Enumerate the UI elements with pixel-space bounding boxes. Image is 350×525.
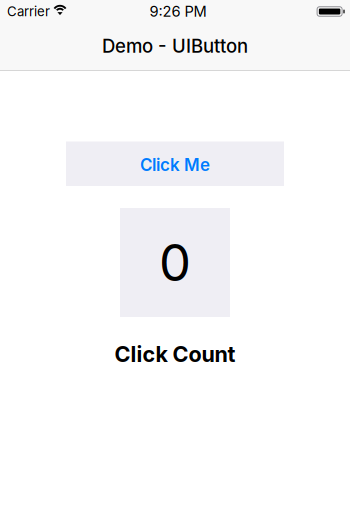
staticText: 9:26 PM bbox=[149, 3, 206, 20]
button[interactable]: Click Me bbox=[66, 141, 284, 186]
staticText: Click Count bbox=[114, 341, 235, 367]
staticText: Demo - UIButton bbox=[102, 35, 248, 57]
staticText: 0 bbox=[159, 232, 191, 293]
staticText: Carrier bbox=[7, 3, 50, 19]
staticText: Click Me bbox=[140, 154, 210, 175]
